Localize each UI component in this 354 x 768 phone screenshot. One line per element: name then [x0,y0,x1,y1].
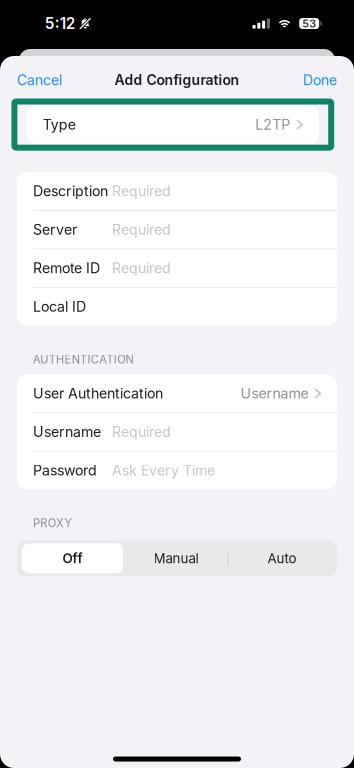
staticText: Auto [267,550,296,566]
staticText: Remote ID [33,259,100,277]
button[interactable]: Type [27,105,319,144]
staticText: Cancel [17,71,62,89]
staticText: PROXY [33,517,72,530]
staticText: Ask Every Time [112,462,215,479]
staticText: Required [112,423,171,440]
staticText: Off [62,550,82,566]
staticText: Description [33,182,108,200]
button[interactable]: Auto [229,543,335,573]
staticText: Required [112,259,171,277]
staticText: Password [33,462,97,479]
button[interactable]: Cancel [17,71,62,89]
staticText: Server [33,221,77,238]
button[interactable]: Password [17,451,337,489]
button[interactable]: Remote ID [17,249,337,287]
staticText: Required [112,182,171,200]
staticText: 5:12 [45,14,76,33]
button[interactable]: Manual [123,543,229,573]
button[interactable]: Server [17,211,337,248]
staticText: Type [43,116,76,133]
staticText: L2TP [255,116,290,133]
staticText: Username [33,423,101,440]
staticText: AUTHENTICATION [33,353,133,366]
staticText: Required [112,221,171,238]
staticText: Done [303,71,337,89]
button[interactable]: Done [303,71,337,89]
button[interactable]: Off [22,543,123,573]
button[interactable]: Username [17,413,337,451]
button[interactable]: User Authentication [17,374,337,412]
staticText: Add Configuration [114,72,239,88]
staticText: 53 [302,17,316,30]
staticText: Username [240,385,308,402]
button[interactable]: Local ID [17,288,337,325]
staticText: Local ID [33,298,86,315]
staticText: User Authentication [33,385,163,402]
staticText: Manual [153,550,198,566]
button[interactable]: Description [17,172,337,210]
